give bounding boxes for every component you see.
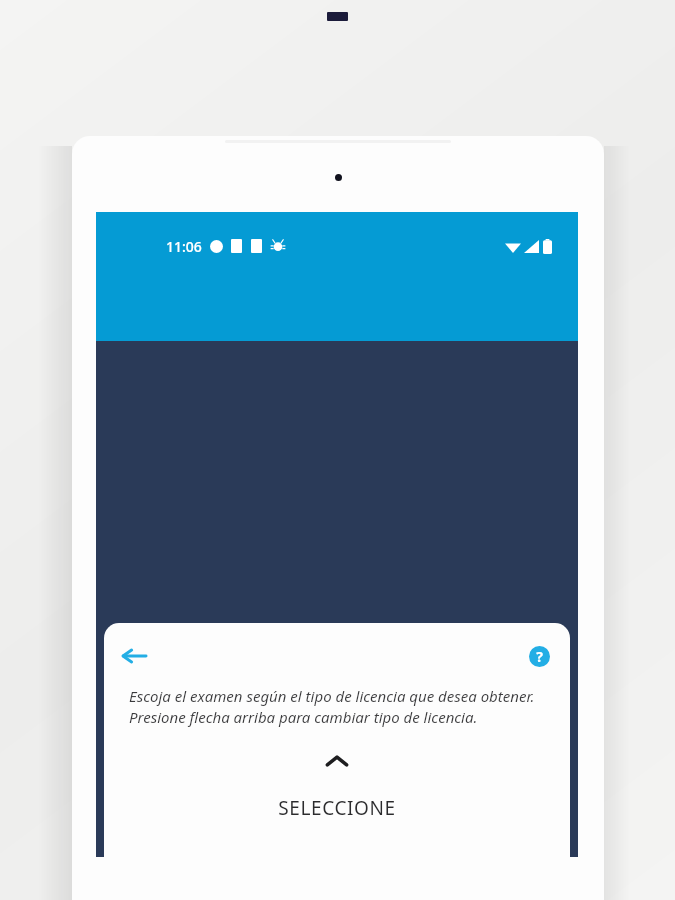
staticText: ?	[536, 647, 543, 666]
button[interactable]: SELECCIONE	[104, 788, 570, 828]
staticText: SELECCIONE	[278, 795, 396, 821]
button[interactable]: Help	[524, 641, 554, 671]
button[interactable]: Back	[118, 640, 150, 672]
staticText: 11:06	[166, 237, 202, 256]
button[interactable]: Expand license type	[104, 746, 570, 776]
staticText: Escoja el examen según el tipo de licenc…	[129, 686, 544, 728]
